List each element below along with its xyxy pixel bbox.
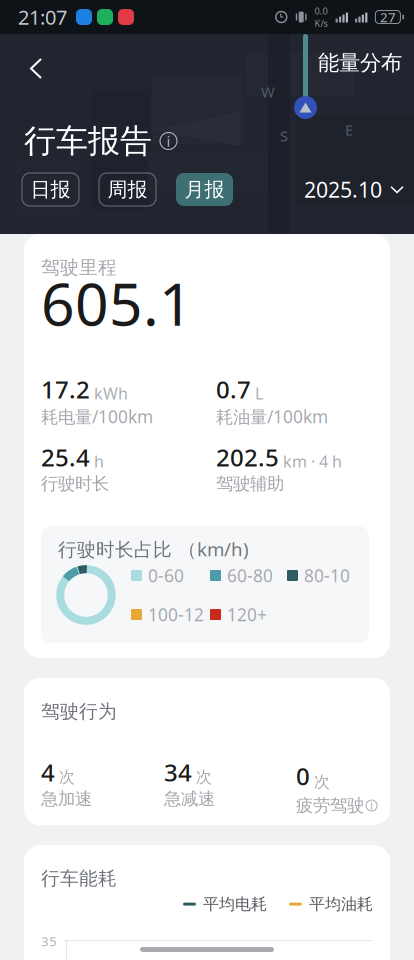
button[interactable]: 月报	[176, 173, 233, 206]
staticText: 疲劳驾驶	[296, 795, 364, 816]
staticText: 耗电量/100km	[41, 405, 153, 428]
staticText: 急减速	[164, 788, 215, 809]
staticText: 日报	[30, 177, 70, 202]
staticText: 202.5	[216, 441, 279, 473]
button[interactable]: 2025.10	[304, 173, 404, 206]
staticText: 平均电耗	[203, 894, 267, 914]
staticText: 0.0	[315, 5, 328, 17]
button[interactable]: 能量分布	[308, 48, 412, 78]
button[interactable]: Back	[16, 44, 56, 93]
staticText: 80-10	[304, 564, 350, 587]
staticText: h	[94, 451, 104, 472]
staticText: 行驶时长	[41, 473, 109, 494]
staticText: 34	[164, 756, 192, 788]
staticText: 行车能耗	[41, 867, 117, 890]
staticText: S	[280, 126, 288, 145]
staticText: 周报	[107, 177, 147, 202]
button[interactable]: 周报	[99, 173, 156, 206]
button[interactable]: Info	[160, 132, 177, 149]
staticText: 2025.10	[304, 175, 382, 204]
staticText: 0	[296, 760, 310, 792]
staticText: E	[345, 120, 353, 139]
staticText: 次	[59, 767, 75, 787]
staticText: km · 4 h	[283, 451, 342, 472]
staticText: i	[370, 798, 373, 813]
staticText: 35	[41, 932, 57, 950]
staticText: 驾驶辅助	[216, 473, 284, 494]
staticText: 能量分布	[318, 50, 402, 76]
staticText: 行车报告	[24, 121, 152, 161]
staticText: 21:07	[18, 4, 67, 30]
staticText: W	[261, 82, 275, 101]
staticText: 25.4	[41, 441, 90, 473]
staticText: 驾驶行为	[41, 700, 117, 723]
staticText: K/s	[315, 17, 328, 29]
staticText: 0.7	[216, 373, 251, 405]
staticText: kWh	[94, 383, 128, 404]
staticText: 0-60	[148, 564, 184, 587]
staticText: 120+	[227, 603, 267, 626]
staticText: 急加速	[41, 788, 92, 809]
staticText: i	[166, 131, 170, 151]
staticText: 100-12	[148, 603, 204, 626]
staticText: 次	[314, 772, 330, 792]
staticText: 17.2	[41, 373, 90, 405]
staticText: 月报	[184, 177, 224, 202]
staticText: 4	[41, 756, 55, 788]
button[interactable]: 日报	[22, 173, 79, 206]
staticText: 60-80	[227, 564, 273, 587]
staticText: 27	[380, 8, 396, 26]
staticText: 次	[196, 767, 212, 787]
staticText: L	[255, 383, 263, 404]
staticText: 驾驶里程	[41, 256, 117, 279]
staticText: 行驶时长占比 （km/h)	[58, 537, 249, 561]
staticText: 平均油耗	[309, 894, 373, 914]
staticText: 605.1	[41, 264, 193, 342]
staticText: 耗油量/100km	[216, 405, 328, 428]
